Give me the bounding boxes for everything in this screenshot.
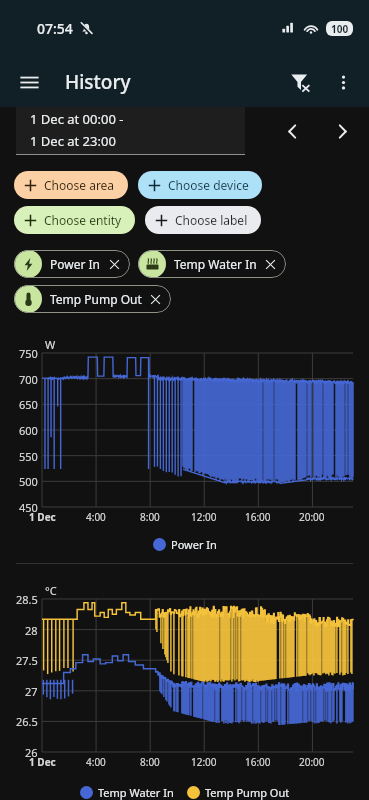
staticText: 27.5 — [16, 653, 38, 667]
staticText: °C — [45, 583, 57, 598]
button[interactable]: Temp Water In — [138, 250, 286, 278]
staticText: 20:00 — [299, 510, 325, 524]
button[interactable]: Previous period — [273, 112, 311, 150]
staticText: W — [45, 337, 56, 352]
button[interactable]: Open navigation menu — [9, 62, 49, 102]
staticText: 550 — [19, 449, 38, 463]
button[interactable]: Choose area — [14, 171, 128, 199]
staticText: Choose device — [168, 177, 249, 193]
staticText: 750 — [19, 346, 38, 360]
button[interactable]: Choose device — [138, 171, 262, 199]
staticText: 1 Dec — [29, 510, 56, 524]
staticText: 26.5 — [16, 714, 38, 728]
staticText: 07:54 — [37, 19, 73, 38]
staticText: 1 Dec — [29, 755, 56, 769]
staticText: 12:00 — [191, 755, 217, 769]
staticText: 27 — [25, 684, 38, 698]
staticText: Power In — [50, 256, 101, 272]
staticText: 700 — [19, 372, 38, 386]
button[interactable]: Power In — [14, 250, 130, 278]
staticText: Choose entity — [44, 212, 122, 228]
staticText: 8:00 — [140, 510, 160, 524]
staticText: 600 — [19, 423, 38, 437]
staticText: 28.5 — [16, 592, 38, 606]
staticText: 16:00 — [245, 510, 271, 524]
staticText: History — [65, 69, 131, 95]
staticText: Choose label — [175, 212, 248, 228]
staticText: 12:00 — [191, 510, 217, 524]
staticText: 8:00 — [140, 755, 160, 769]
button[interactable]: Clear filter — [279, 60, 323, 104]
staticText: 500 — [19, 474, 38, 488]
button[interactable]: Temp Pump Out — [14, 285, 171, 313]
button[interactable]: 1 Dec at 00:00 - — [16, 107, 245, 155]
staticText: Temp Pump Out — [50, 291, 142, 307]
staticText: 16:00 — [245, 755, 271, 769]
button[interactable]: Next period — [323, 112, 361, 150]
button[interactable]: Choose label — [145, 206, 261, 234]
staticText: 650 — [19, 397, 38, 411]
staticText: 1 Dec at 23:00 — [30, 132, 116, 150]
staticText: 4:00 — [86, 510, 106, 524]
staticText: 1 Dec at 00:00 - — [30, 110, 124, 128]
staticText: Temp Water In — [98, 785, 174, 800]
staticText: Temp Water In — [174, 256, 257, 272]
staticText: 100 — [331, 22, 349, 36]
staticText: Power In — [171, 537, 217, 552]
staticText: Temp Pump Out — [205, 785, 290, 800]
staticText: 20:00 — [299, 755, 325, 769]
button[interactable]: Choose entity — [14, 206, 135, 234]
staticText: 450 — [19, 500, 38, 514]
staticText: Choose area — [44, 177, 115, 193]
staticText: 26 — [25, 745, 38, 759]
staticText: 4:00 — [86, 755, 106, 769]
button[interactable]: More options — [323, 62, 363, 102]
staticText: 28 — [25, 623, 38, 637]
